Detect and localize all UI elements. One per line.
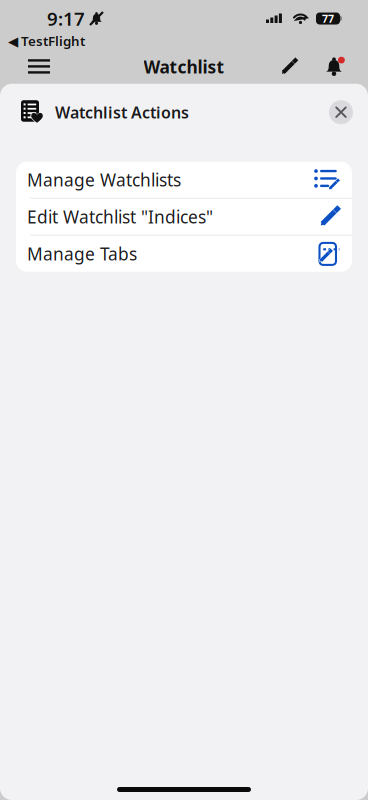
button[interactable]: Edit Watchlist "Indices"	[16, 199, 352, 235]
staticText: 9:17	[47, 6, 85, 31]
staticText: Watchlist	[143, 55, 224, 78]
button[interactable]: Edit	[272, 52, 306, 82]
button[interactable]: Manage Watchlists	[16, 162, 352, 198]
button[interactable]: Close	[329, 100, 353, 124]
staticText: ◀ TestFlight	[8, 32, 85, 50]
button[interactable]: Menu	[18, 52, 60, 82]
button[interactable]: Manage Tabs	[16, 236, 352, 272]
staticText: Watchlist Actions	[55, 102, 189, 123]
staticText: Manage Tabs	[27, 242, 137, 265]
button[interactable]: Notifications	[317, 52, 351, 82]
staticText: Manage Watchlists	[27, 168, 181, 191]
staticText: 77	[322, 11, 334, 26]
staticText: Edit Watchlist "Indices"	[27, 205, 213, 228]
